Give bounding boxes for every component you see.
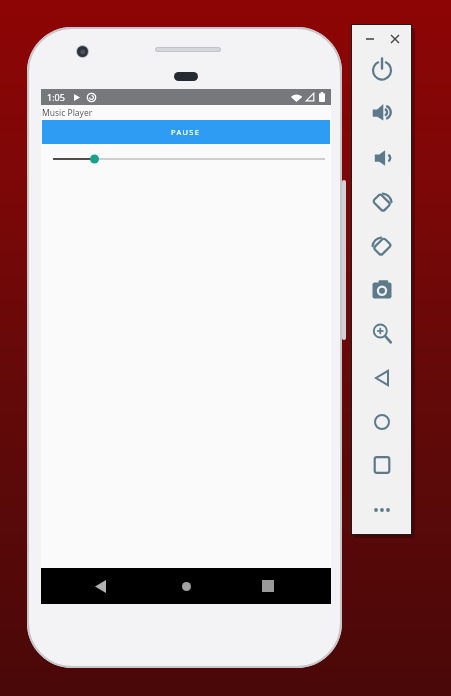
- button[interactable]: [363, 227, 400, 265]
- button[interactable]: [387, 31, 403, 47]
- button[interactable]: [363, 359, 400, 397]
- button[interactable]: [363, 403, 400, 441]
- button[interactable]: [173, 573, 200, 599]
- button[interactable]: [362, 31, 378, 47]
- button[interactable]: [363, 139, 400, 177]
- button[interactable]: [363, 183, 400, 221]
- button[interactable]: PAUSE: [42, 120, 330, 144]
- button[interactable]: [87, 573, 114, 599]
- button[interactable]: [363, 446, 400, 484]
- button[interactable]: [254, 573, 281, 599]
- button[interactable]: [363, 314, 400, 352]
- staticText: 1:05: [47, 91, 65, 103]
- button[interactable]: [363, 271, 400, 309]
- button[interactable]: [363, 51, 400, 89]
- button[interactable]: [363, 94, 400, 132]
- button[interactable]: [41, 144, 331, 174]
- staticText: Music Player: [42, 107, 93, 119]
- button[interactable]: [363, 491, 400, 529]
- staticText: PAUSE: [171, 127, 201, 137]
